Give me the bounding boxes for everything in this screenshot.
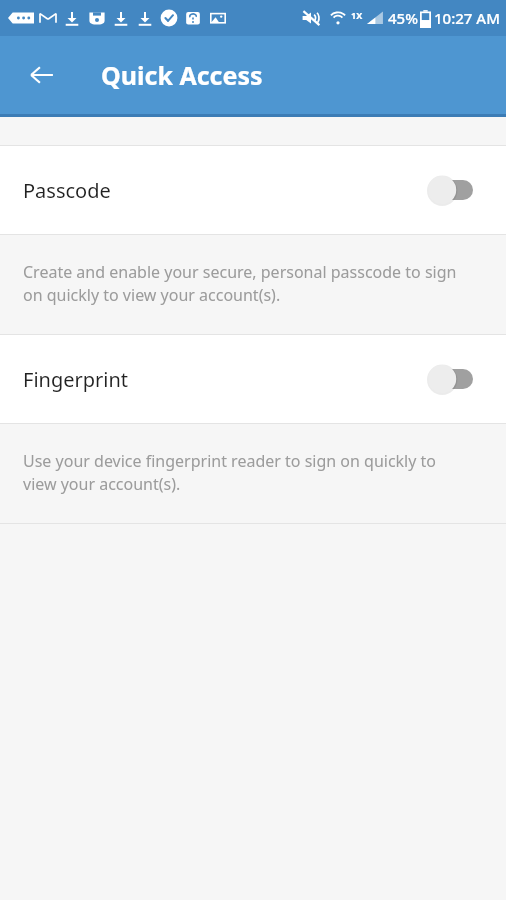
staticText: 10:27 AM xyxy=(434,8,500,28)
button[interactable]: Toggle xyxy=(427,170,483,210)
button[interactable]: Passcode xyxy=(0,146,506,234)
staticText: Quick Access xyxy=(101,58,263,92)
staticText: 45% xyxy=(388,8,418,28)
button[interactable]: Fingerprint xyxy=(0,335,506,423)
staticText: 1X xyxy=(351,9,363,21)
button[interactable]: Toggle xyxy=(427,359,483,399)
staticText: Passcode xyxy=(23,177,111,204)
staticText: Create and enable your secure, personal … xyxy=(23,261,472,306)
staticText: Fingerprint xyxy=(23,366,129,393)
button[interactable]: Back xyxy=(18,51,66,99)
staticText: Use your device fingerprint reader to si… xyxy=(23,450,472,495)
